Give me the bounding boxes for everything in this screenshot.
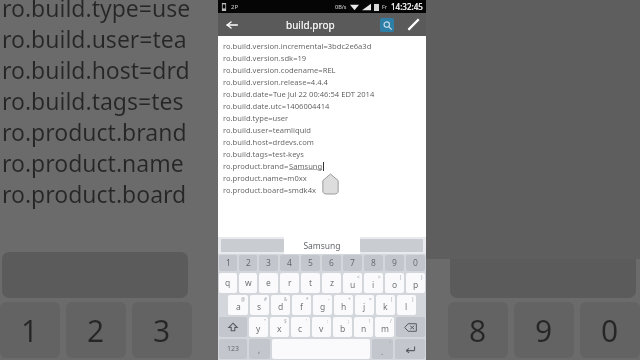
button[interactable]: , (249, 339, 270, 359)
staticText: $ (284, 318, 287, 324)
button[interactable]: + (334, 295, 353, 315)
staticText: e (266, 277, 271, 289)
staticText: ro.build.version.codename=REL (223, 65, 336, 75)
button[interactable]: e (259, 273, 278, 293)
staticText: r (288, 277, 292, 289)
staticText: : (327, 318, 329, 324)
button[interactable]: Edit (400, 13, 426, 36)
staticText: d (278, 301, 284, 313)
button[interactable]: 8 (364, 255, 383, 271)
staticText: 2 (87, 310, 105, 351)
button[interactable]: @ (228, 295, 248, 315)
button[interactable]: $ (270, 317, 289, 337)
staticText: y (256, 323, 261, 335)
staticText: ) (412, 296, 414, 302)
staticText: n (361, 323, 367, 335)
staticText: 5 (308, 257, 313, 269)
staticText: ' (306, 318, 308, 324)
staticText: ) (421, 274, 423, 280)
button[interactable]: 123 (219, 339, 247, 359)
button[interactable]: " (249, 317, 268, 337)
button[interactable]: Text cursor handle (322, 174, 339, 194)
staticText: ro.build.host=drd (2, 54, 190, 85)
staticText: o (392, 279, 398, 291)
button[interactable]: & (271, 295, 290, 315)
staticText: , (258, 344, 261, 355)
staticText: ro.product.name=m0xx (223, 173, 307, 183)
button[interactable]: Samsung (284, 237, 360, 254)
staticText: ro.build.user=teamliquid (223, 125, 311, 135)
staticText: 123 (227, 344, 240, 354)
button[interactable]: Back (218, 13, 246, 36)
button[interactable]: 4 (280, 255, 299, 271)
button[interactable]: 3 (259, 255, 278, 271)
staticText: 8 (469, 310, 487, 351)
staticText: a (236, 301, 241, 313)
staticText: 2 (246, 257, 251, 269)
staticText: ro.build.date.utc=1406004414 (223, 101, 330, 111)
button[interactable]: w (239, 273, 257, 293)
button[interactable]: ; (333, 317, 352, 337)
button[interactable]: 1 (219, 255, 237, 271)
button[interactable]: z (322, 273, 341, 293)
button[interactable]: ) (406, 273, 425, 293)
button[interactable]: Enter (395, 339, 425, 359)
button[interactable]: = (355, 295, 374, 315)
staticText: / (390, 318, 392, 324)
button[interactable]: / (375, 317, 394, 337)
staticText: k (383, 301, 388, 313)
button[interactable]: < (343, 273, 362, 293)
button[interactable]: 6 (322, 255, 341, 271)
staticText: 8 (371, 257, 376, 269)
staticText: < (357, 274, 360, 280)
staticText: ro.product.name (2, 147, 184, 178)
staticText: 6 (329, 257, 334, 269)
staticText: 14:32:45 (391, 1, 423, 12)
staticText: 2P (231, 3, 239, 11)
staticText: * (306, 296, 309, 302)
button[interactable]: ! (354, 317, 373, 337)
staticText: c (298, 323, 303, 335)
button[interactable]: Search (374, 13, 400, 36)
staticText: ; (348, 318, 350, 324)
button[interactable]: : (312, 317, 331, 337)
button[interactable]: t (301, 273, 320, 293)
button[interactable]: Shift (219, 317, 247, 337)
staticText: & (284, 296, 288, 302)
staticText: Fr (382, 3, 388, 10)
button[interactable]: > (364, 273, 383, 293)
button[interactable]: # (250, 295, 269, 315)
staticText: 3 (266, 257, 271, 269)
button[interactable]: 0 (406, 255, 425, 271)
staticText: Samsung (289, 161, 323, 171)
staticText: ro.product.board (2, 178, 187, 209)
staticText: ro.build.version.release=4.4.4 (223, 77, 328, 87)
staticText: h (341, 301, 347, 313)
staticText: ro.product.brand= (223, 161, 289, 171)
staticText: @ (241, 296, 246, 302)
staticText: - (328, 296, 330, 302)
staticText: x (277, 323, 282, 335)
button[interactable]: 5 (301, 255, 320, 271)
button[interactable]: ) (397, 295, 416, 315)
staticText: ro.build.tags=test-keys (223, 149, 304, 159)
staticText: 9 (535, 310, 553, 351)
staticText: > (378, 274, 381, 280)
button[interactable]: - (313, 295, 332, 315)
button[interactable]: ( (385, 273, 404, 293)
button[interactable]: 9 (385, 255, 404, 271)
button[interactable]: 2 (239, 255, 257, 271)
button[interactable]: ( (376, 295, 395, 315)
button[interactable]: * (292, 295, 311, 315)
button[interactable]: q (219, 273, 237, 293)
staticText: ( (391, 296, 393, 302)
button[interactable]: 7 (343, 255, 362, 271)
button[interactable]: r (280, 273, 299, 293)
button[interactable]: ' (291, 317, 310, 337)
button[interactable]: Backspace (396, 317, 425, 337)
staticText: ro.build.date=Tue Jul 22 00:46:54 EDT 20… (223, 89, 375, 99)
